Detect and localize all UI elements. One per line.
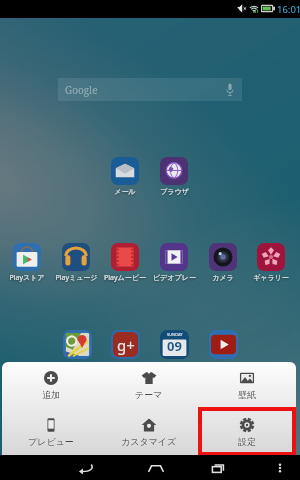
- staticText: カメラ: [212, 273, 234, 282]
- button[interactable]: More options: [272, 460, 288, 476]
- button[interactable]: カメラ: [199, 243, 247, 282]
- staticText: 追加: [42, 389, 60, 400]
- button[interactable]: Google Plus: [111, 330, 140, 359]
- staticText: プレビュー: [28, 436, 74, 447]
- staticText: SUNDAY: [167, 332, 183, 337]
- staticText: Playミュージ: [55, 273, 98, 283]
- button[interactable]: Maps: [63, 330, 92, 359]
- button[interactable]: プレビュー: [2, 408, 100, 455]
- button[interactable]: ビデオプレー: [150, 243, 198, 282]
- button[interactable]: Playミュージ: [52, 243, 100, 283]
- staticText: テーマ: [135, 389, 163, 400]
- button[interactable]: ブラウザ: [150, 157, 198, 196]
- button[interactable]: カスタマイズ: [100, 408, 198, 455]
- staticText: ビデオプレー: [153, 273, 196, 282]
- staticText: 壁紙: [238, 389, 256, 400]
- button[interactable]: Google: [58, 78, 242, 101]
- button[interactable]: Back: [75, 457, 97, 479]
- button[interactable]: テーマ: [100, 362, 198, 408]
- button[interactable]: メール: [101, 157, 149, 196]
- button[interactable]: 設定: [198, 408, 296, 455]
- staticText: 16:01: [277, 3, 300, 16]
- button[interactable]: Calendar: [160, 330, 189, 359]
- staticText: ギャラリー: [253, 273, 289, 282]
- button[interactable]: YouTube: [209, 330, 238, 359]
- staticText: 設定: [238, 436, 256, 447]
- staticText: カスタマイズ: [121, 436, 177, 447]
- button[interactable]: Playムービー: [101, 243, 149, 283]
- button[interactable]: ギャラリー: [247, 243, 295, 282]
- staticText: Playムービー: [104, 273, 146, 283]
- staticText: 09: [167, 337, 182, 355]
- staticText: Playストア: [9, 273, 45, 283]
- button[interactable]: 追加: [2, 362, 100, 408]
- staticText: Google: [65, 83, 98, 97]
- button[interactable]: Home: [145, 457, 167, 479]
- staticText: g+: [117, 335, 135, 355]
- other: Voice search: [226, 83, 234, 96]
- button[interactable]: Playストア: [3, 243, 51, 283]
- staticText: メール: [114, 187, 136, 196]
- button[interactable]: 壁紙: [198, 362, 296, 408]
- staticText: ブラウザ: [160, 187, 189, 196]
- button[interactable]: Recent apps: [208, 457, 230, 479]
